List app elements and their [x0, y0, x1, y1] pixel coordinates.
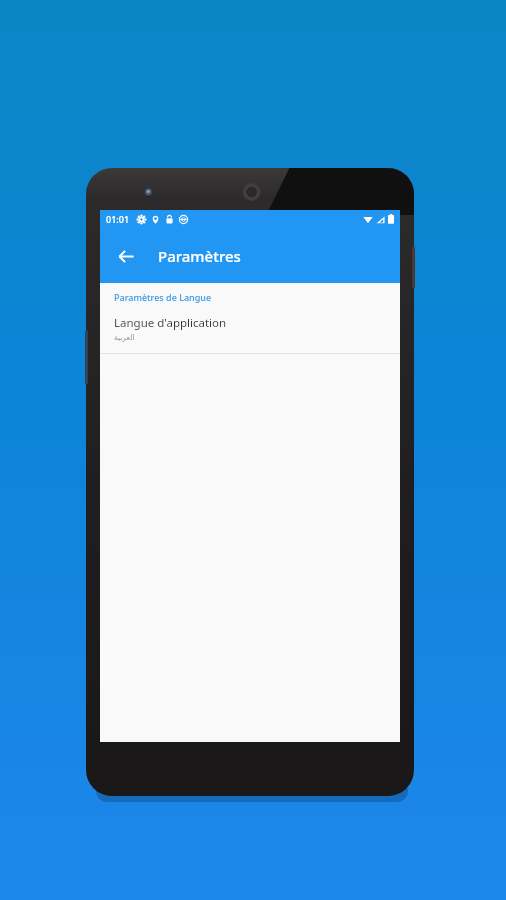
staticText: Paramètres [158, 246, 241, 266]
staticText: العربية [114, 333, 135, 342]
button[interactable]: Back [110, 240, 142, 272]
button[interactable]: Langue d'application [100, 310, 400, 353]
staticText: Langue d'application [114, 315, 227, 331]
staticText: 01:01 [106, 213, 130, 225]
staticText: Paramètres de Langue [114, 291, 212, 303]
